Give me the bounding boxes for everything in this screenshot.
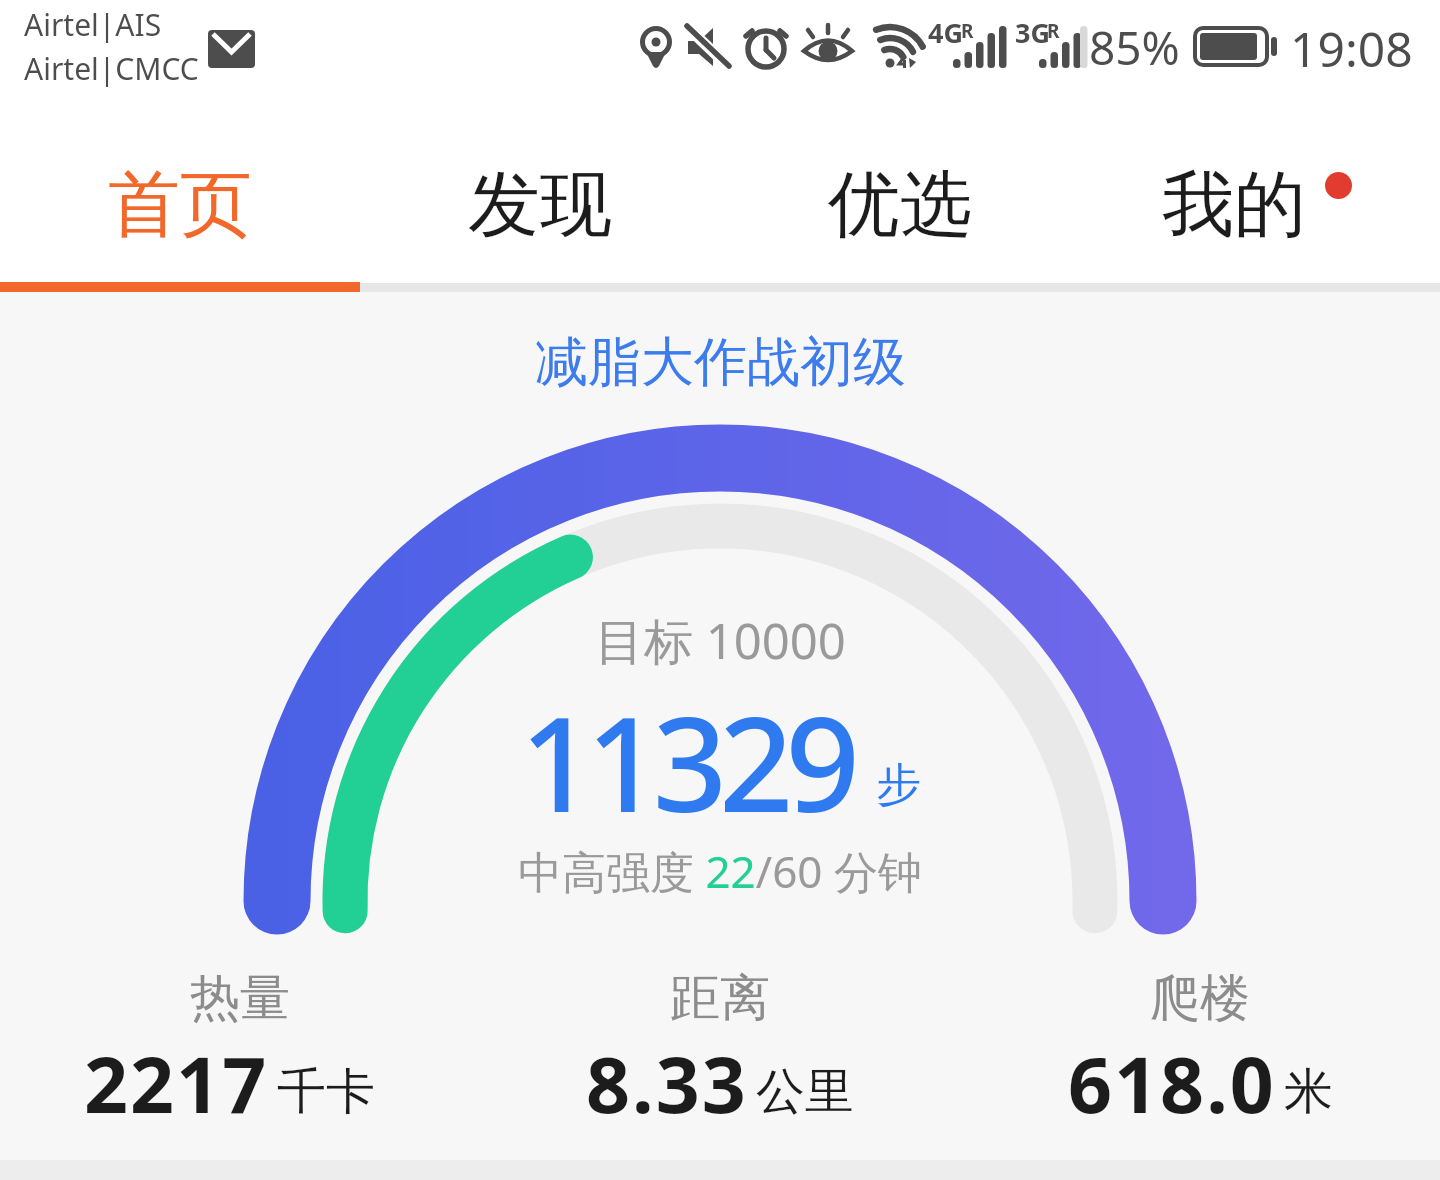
button[interactable]: 优选: [720, 153, 1080, 257]
staticText: 爬楼: [1150, 967, 1250, 1030]
staticText: 8.33: [586, 1031, 748, 1136]
staticText: 发现: [468, 160, 612, 251]
staticText: 19:08: [1290, 16, 1413, 81]
staticText: 首页: [108, 160, 252, 251]
staticText: 3G: [1015, 14, 1050, 51]
staticText: 优选: [828, 160, 972, 251]
staticText: R: [1047, 18, 1060, 44]
staticText: 2217: [84, 1031, 269, 1136]
staticText: 公里: [756, 1061, 854, 1123]
button[interactable]: 我的: [1080, 153, 1440, 257]
staticText: Airtel|CMCC: [24, 48, 199, 89]
staticText: R: [961, 18, 974, 44]
staticText: 千卡: [277, 1061, 375, 1123]
staticText: Airtel|AIS: [24, 4, 162, 45]
staticText: 我的: [1162, 160, 1306, 251]
staticText: 热量: [190, 967, 290, 1030]
staticText: 11329: [520, 673, 852, 850]
staticText: 减脂大作战初级: [535, 329, 906, 396]
staticText: 618.0: [1068, 1031, 1276, 1136]
staticText: 步: [876, 757, 921, 814]
staticText: 目标 10000: [595, 607, 846, 674]
staticText: 距离: [670, 967, 770, 1030]
staticText: 4G: [928, 14, 963, 51]
staticText: 中高强度 22/60 分钟: [518, 841, 922, 901]
button[interactable]: 发现: [360, 153, 720, 257]
button[interactable]: 首页: [0, 153, 360, 257]
staticText: 85%: [1089, 16, 1180, 79]
staticText: 米: [1284, 1061, 1333, 1123]
